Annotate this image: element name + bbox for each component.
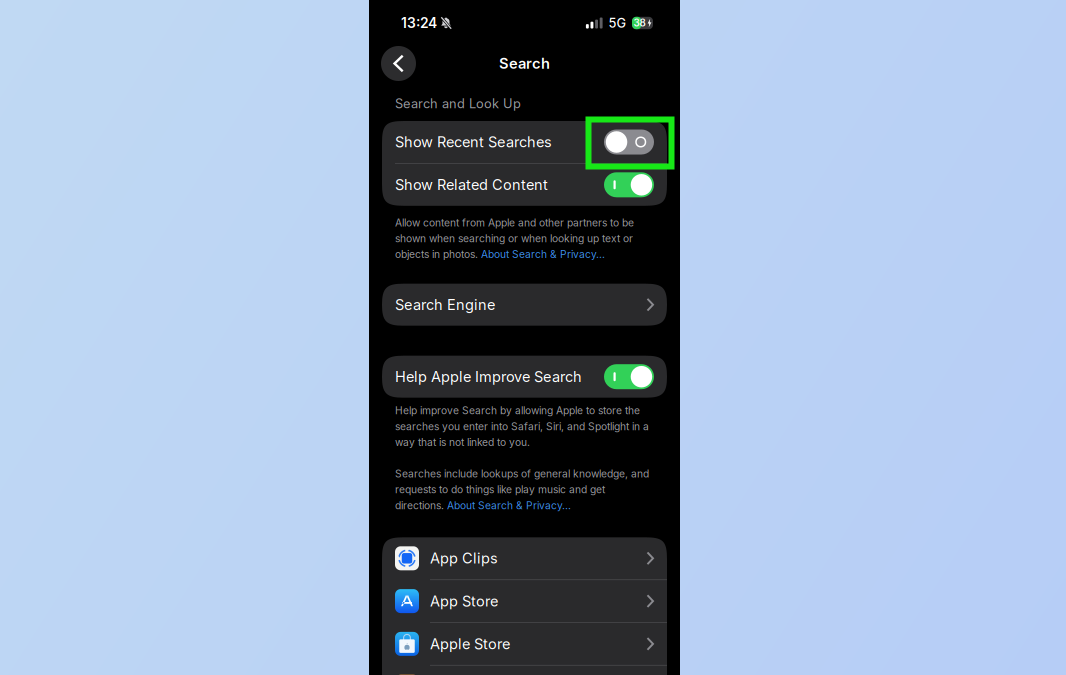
button[interactable]: Apple Store <box>382 623 667 665</box>
staticText: Search <box>499 55 550 72</box>
staticText: App Clips <box>430 549 498 567</box>
staticText: Search and Look Up <box>395 96 521 111</box>
staticText: Allow content from Apple and other partn… <box>395 216 634 229</box>
staticText: requests to do things like play music an… <box>395 483 605 496</box>
staticText: Show Recent Searches <box>395 133 552 151</box>
button[interactable]: Books <box>382 666 667 675</box>
staticText: shown when searching or when looking up … <box>395 232 633 245</box>
staticText: Show Related Content <box>395 176 548 194</box>
button[interactable]: App Store <box>382 580 667 622</box>
button[interactable]: Search Engine <box>382 284 667 326</box>
staticText: 38 <box>634 17 646 29</box>
staticText: Help improve Search by allowing Apple to… <box>395 404 640 417</box>
staticText: 5G <box>608 15 626 31</box>
staticText: way that is not linked to you. <box>395 436 530 448</box>
staticText: objects in photos. <box>395 248 481 260</box>
button[interactable]: Show Related Content <box>382 164 667 206</box>
staticText: 13:24 <box>401 15 437 31</box>
staticText: About Search & Privacy... <box>447 499 571 512</box>
staticText: Searches include lookups of general know… <box>395 468 649 480</box>
staticText: Apple Store <box>430 635 510 653</box>
staticText: directions. <box>395 499 447 512</box>
staticText: About Search & Privacy... <box>481 248 605 260</box>
staticText: searches you enter into Safari, Siri, an… <box>395 420 649 433</box>
button[interactable]: Help Apple Improve Search <box>382 356 667 398</box>
staticText: Search Engine <box>395 296 495 313</box>
button[interactable]: Show Recent Searches <box>382 121 667 163</box>
button[interactable]: Back <box>381 46 416 81</box>
button[interactable]: App Clips <box>382 537 667 579</box>
staticText: App Store <box>430 592 498 610</box>
staticText: Help Apple Improve Search <box>395 368 582 385</box>
